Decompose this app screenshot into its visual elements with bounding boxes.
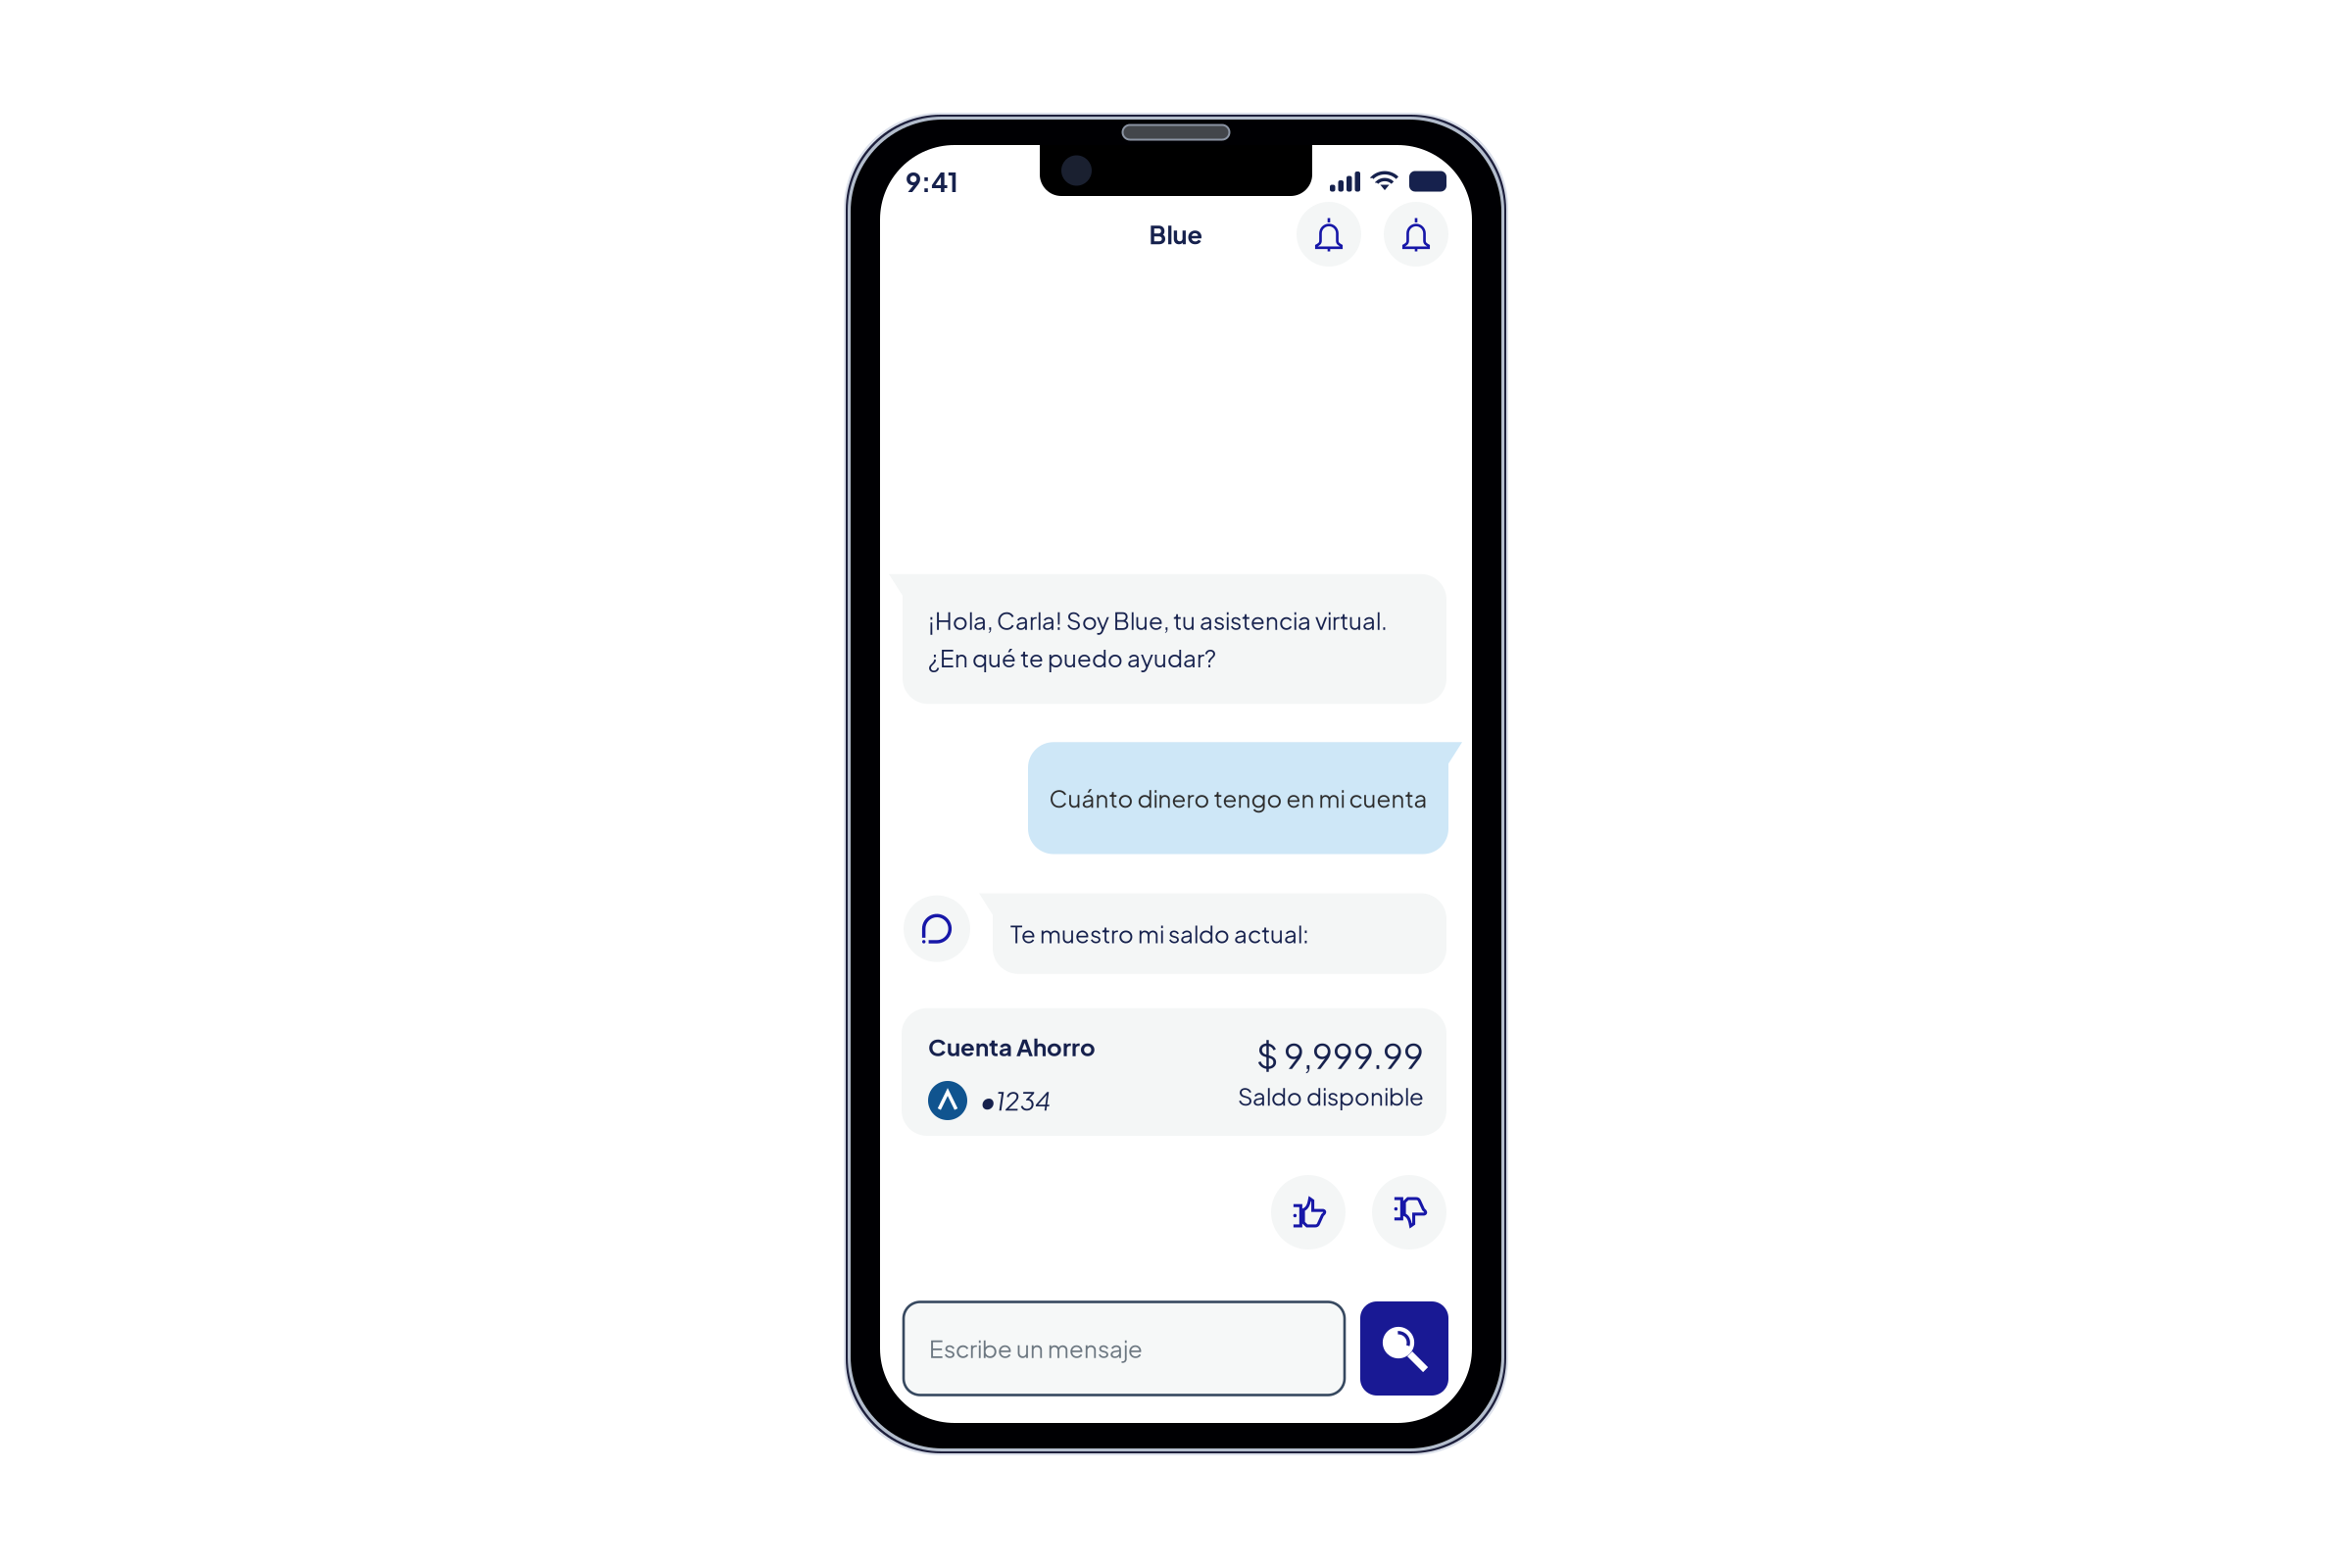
button[interactable]: Escribe un mensaje [904,1302,1345,1395]
button[interactable]: Enviar [1360,1301,1448,1396]
button[interactable]: Me gusta [1271,1175,1346,1249]
staticText: 9:41 [906,165,958,198]
staticText: Saldo disponible [1238,1081,1424,1111]
staticText: Cuenta Ahorro [928,1032,1096,1061]
staticText: •1234 [980,1085,1051,1116]
button[interactable]: Notificaciones [1297,202,1361,267]
staticText: Te muestro mi saldo actual: [1010,919,1309,948]
staticText: Blue [1149,219,1203,250]
staticText: Escribe un mensaje [929,1334,1143,1363]
staticText: ¿En qué te puedo ayudar? [928,643,1216,672]
button[interactable]: No me gusta [1372,1175,1446,1249]
staticText: ¡Hola, Carla! Soy Blue, tu asistencia vi… [928,605,1388,635]
staticText: Cuánto dinero tengo en mi cuenta [1049,783,1427,813]
staticText: $ 9,999.99 [1256,1034,1424,1077]
button[interactable]: Alertas [1384,202,1448,267]
